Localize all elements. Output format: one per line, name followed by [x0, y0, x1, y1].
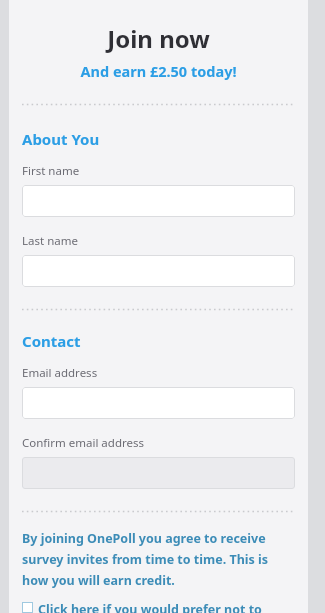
staticText: Email address: [22, 365, 98, 381]
staticText: Join now: [22, 22, 295, 55]
staticText: Click here if you would prefer not to re…: [38, 601, 295, 613]
button[interactable]: Email address: [22, 387, 295, 419]
staticText: Contact: [22, 331, 81, 351]
staticText: By joining OnePoll you agree to receive …: [22, 530, 295, 589]
button[interactable]: First name: [22, 185, 295, 217]
button[interactable]: Click here if you would prefer not to re…: [22, 601, 295, 613]
staticText: First name: [22, 163, 80, 179]
staticText: And earn £2.50 today!: [22, 61, 295, 81]
staticText: Confirm email address: [22, 435, 144, 451]
staticText: About You: [22, 129, 100, 149]
button[interactable]: Confirm email address: [22, 457, 295, 489]
staticText: Last name: [22, 233, 78, 249]
button[interactable]: Last name: [22, 255, 295, 287]
